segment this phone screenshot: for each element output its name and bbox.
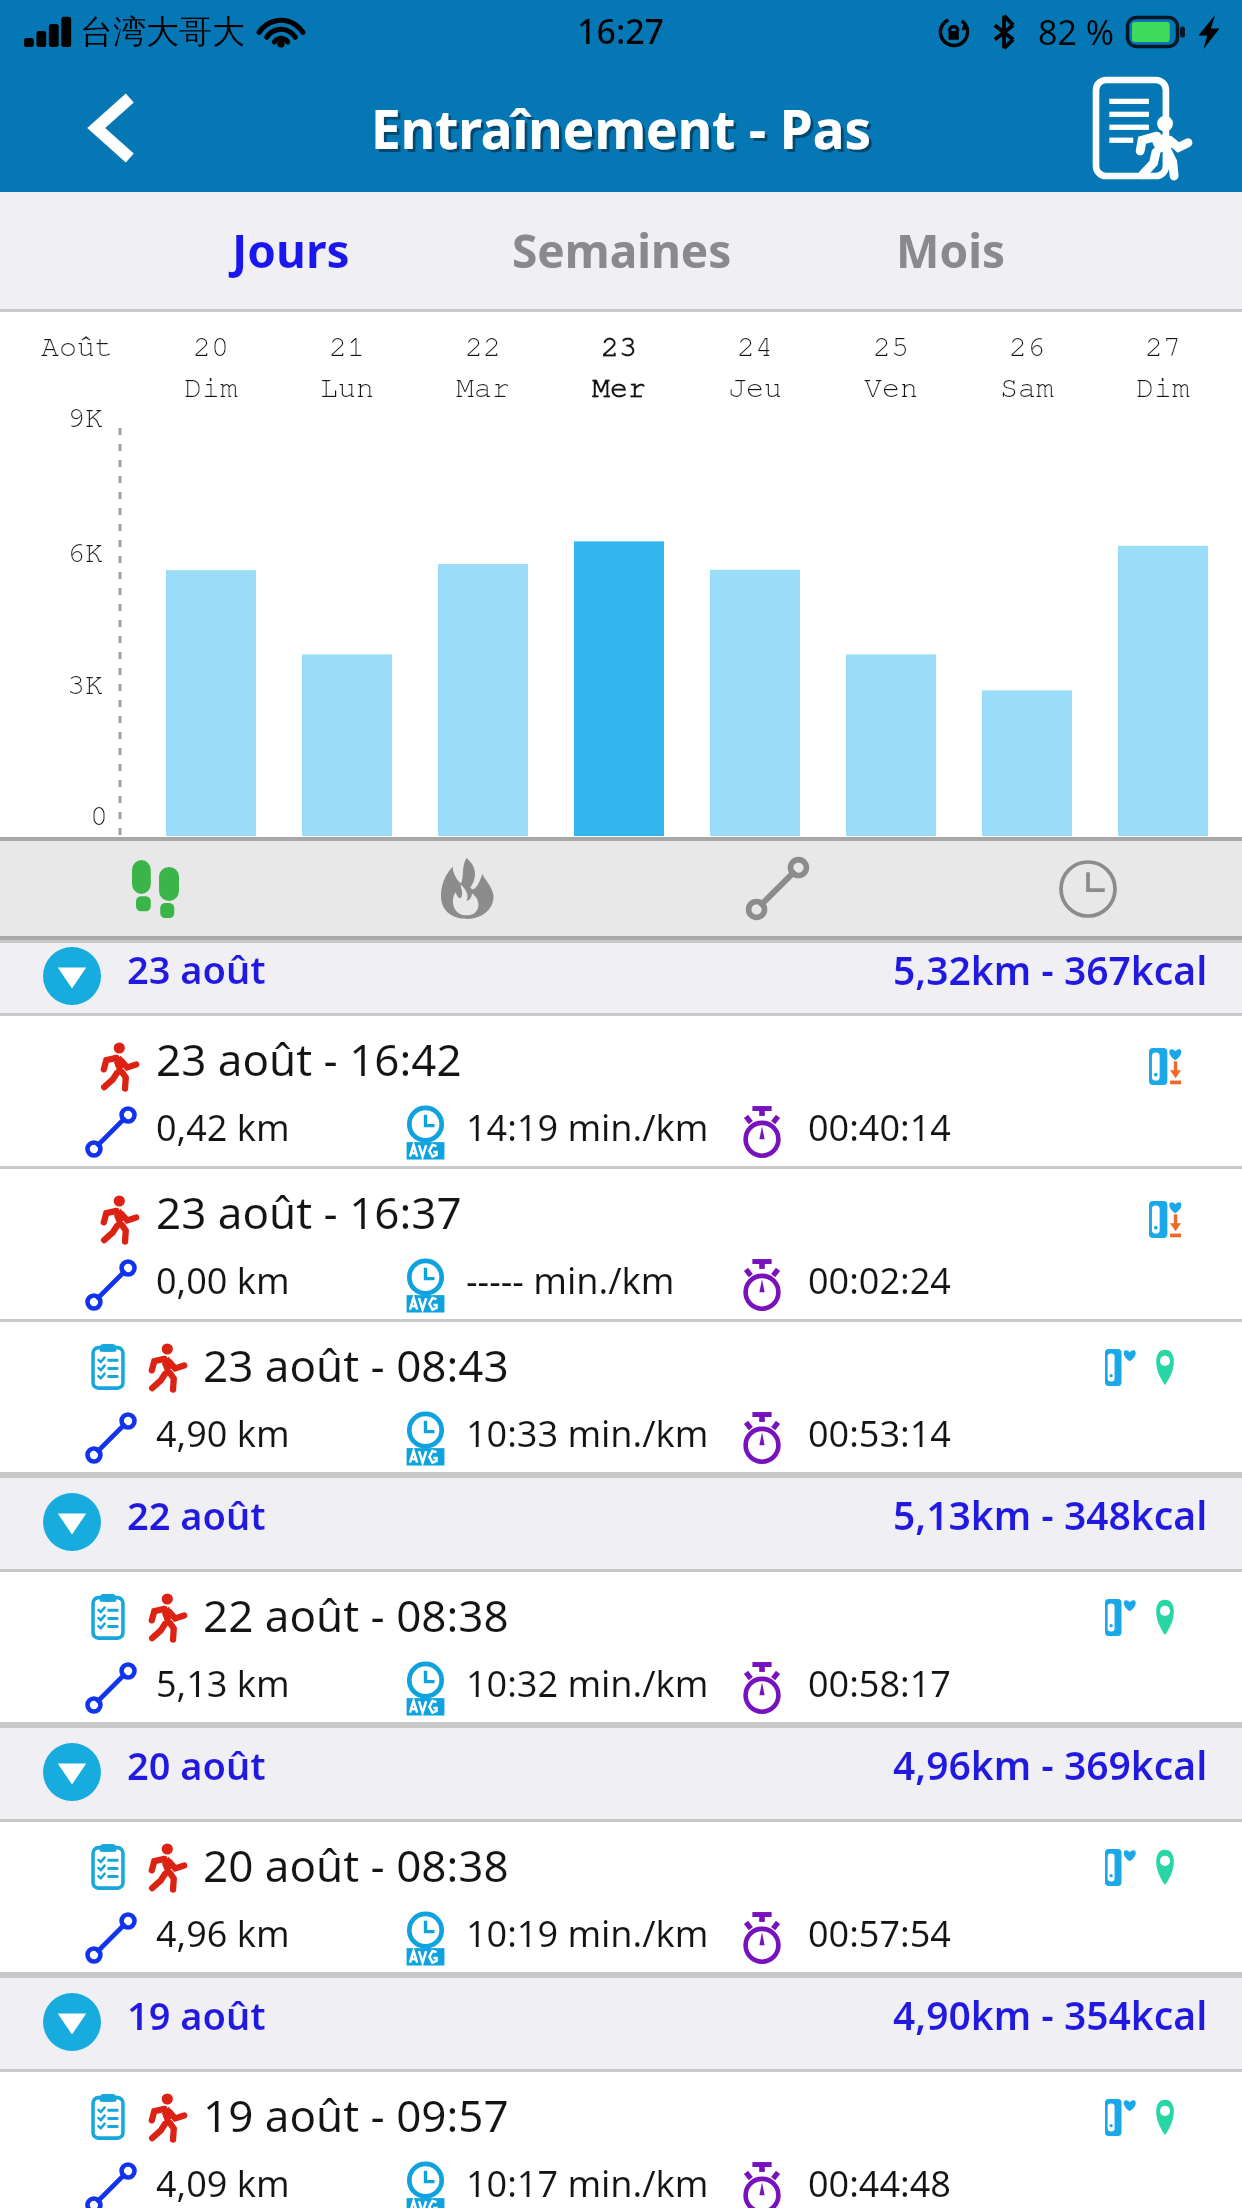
staticText: 16:27 bbox=[577, 8, 665, 54]
button[interactable]: Distance bbox=[622, 837, 933, 940]
button[interactable]: 20 août - 08:38 bbox=[0, 1822, 1242, 1975]
button[interactable]: Steps bbox=[0, 837, 311, 940]
staticText: Lun bbox=[320, 373, 374, 403]
staticText: 5,13km - 348kcal bbox=[893, 1488, 1208, 1541]
staticText: 22 août - 08:38 bbox=[203, 1585, 509, 1645]
staticText: 00:02:24 bbox=[808, 1256, 951, 1305]
staticText: 0 bbox=[90, 801, 108, 831]
staticText: 25 bbox=[873, 332, 909, 362]
button[interactable]: 23 août - 16:42 bbox=[0, 1016, 1242, 1169]
staticText: 4,96 km bbox=[156, 1909, 290, 1958]
staticText: Mois bbox=[896, 219, 1005, 282]
staticText: Dim bbox=[1136, 373, 1190, 403]
staticText: 9K bbox=[67, 403, 103, 433]
staticText: Semaines bbox=[512, 219, 732, 282]
staticText: 26 bbox=[1009, 332, 1045, 362]
staticText: 10:33 min./km bbox=[466, 1409, 709, 1458]
staticText: 10:32 min./km bbox=[466, 1659, 709, 1708]
staticText: Sam bbox=[1000, 373, 1054, 403]
button[interactable]: 19 août bbox=[0, 1978, 1242, 2069]
staticText: 3K bbox=[67, 670, 103, 700]
staticText: Jours bbox=[232, 219, 350, 282]
staticText: 23 août - 16:37 bbox=[156, 1182, 462, 1242]
button[interactable]: Training log bbox=[1078, 66, 1194, 190]
staticText: 00:57:54 bbox=[808, 1909, 951, 1958]
staticText: 24 bbox=[737, 332, 773, 362]
staticText: 4,09 km bbox=[156, 2159, 290, 2208]
staticText: 20 août - 08:38 bbox=[203, 1835, 509, 1895]
staticText: 14:19 min./km bbox=[466, 1103, 709, 1152]
staticText: 4,90 km bbox=[156, 1409, 290, 1458]
button[interactable]: Jours bbox=[126, 192, 456, 312]
staticText: 19 août bbox=[127, 1989, 266, 2041]
button[interactable]: 19 août - 09:57 bbox=[0, 2072, 1242, 2208]
staticText: Mer bbox=[592, 373, 646, 403]
staticText: 82 % bbox=[1038, 9, 1114, 55]
button[interactable]: Mois bbox=[785, 192, 1115, 312]
button[interactable]: 23 août - 16:37 bbox=[0, 1169, 1242, 1322]
staticText: 27 bbox=[1145, 332, 1181, 362]
staticText: Entraînement - Pas bbox=[371, 92, 872, 164]
staticText: 6K bbox=[67, 538, 103, 568]
staticText: ----- min./km bbox=[466, 1256, 675, 1305]
button[interactable]: 20 août bbox=[0, 1728, 1242, 1819]
staticText: 00:58:17 bbox=[808, 1659, 951, 1708]
staticText: 22 bbox=[465, 332, 501, 362]
button[interactable]: Back bbox=[68, 83, 158, 173]
staticText: 22 août bbox=[127, 1489, 266, 1541]
staticText: 20 août bbox=[127, 1739, 266, 1791]
staticText: 0,42 km bbox=[156, 1103, 290, 1152]
staticText: 23 bbox=[601, 332, 637, 362]
staticText: Jeu bbox=[728, 373, 782, 403]
button[interactable]: 22 août - 08:38 bbox=[0, 1572, 1242, 1725]
button[interactable]: 23 août bbox=[0, 943, 1242, 1013]
button[interactable]: Calories bbox=[311, 837, 622, 940]
button[interactable]: 23 août - 08:43 bbox=[0, 1322, 1242, 1475]
staticText: Entraînement - Pas bbox=[374, 95, 875, 167]
staticText: 23 août bbox=[127, 943, 266, 995]
staticText: 00:44:48 bbox=[808, 2159, 951, 2208]
staticText: 19 août - 09:57 bbox=[203, 2085, 509, 2145]
staticText: 20 bbox=[193, 332, 229, 362]
staticText: 4,96km - 369kcal bbox=[893, 1738, 1208, 1791]
staticText: 21 bbox=[329, 332, 365, 362]
button[interactable]: 22 août bbox=[0, 1478, 1242, 1569]
staticText: 23 août - 16:42 bbox=[156, 1029, 462, 1089]
staticText: 00:40:14 bbox=[808, 1103, 951, 1152]
staticText: 0,00 km bbox=[156, 1256, 290, 1305]
staticText: 00:53:14 bbox=[808, 1409, 951, 1458]
staticText: 5,32km - 367kcal bbox=[893, 943, 1208, 996]
staticText: Mar bbox=[456, 373, 510, 403]
staticText: 台湾大哥大 bbox=[80, 11, 245, 53]
staticText: Ven bbox=[864, 373, 918, 403]
staticText: Dim bbox=[184, 373, 238, 403]
staticText: 10:17 min./km bbox=[466, 2159, 709, 2208]
staticText: 10:19 min./km bbox=[466, 1909, 709, 1958]
staticText: 23 août - 08:43 bbox=[203, 1335, 509, 1395]
staticText: 4,90km - 354kcal bbox=[893, 1988, 1208, 2041]
button[interactable]: Duration bbox=[933, 837, 1242, 940]
staticText: Août bbox=[41, 332, 113, 362]
staticText: 5,13 km bbox=[156, 1659, 290, 1708]
button[interactable]: Semaines bbox=[457, 192, 787, 312]
